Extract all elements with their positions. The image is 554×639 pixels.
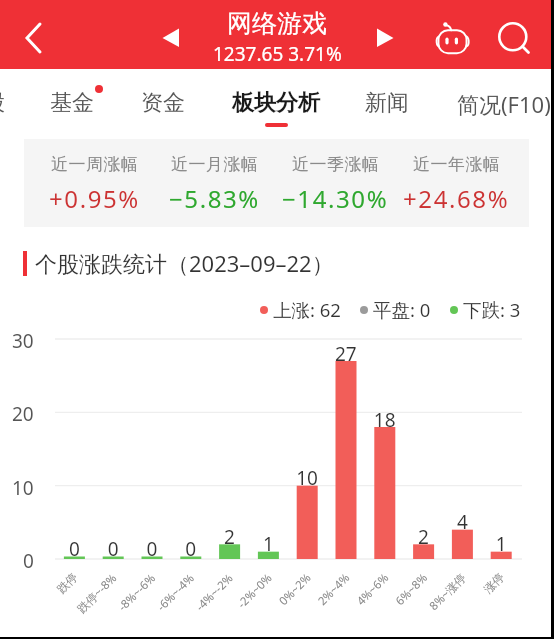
staticText: 个股涨跌统计（2023–09–22） (35, 248, 334, 278)
staticText: −5.83% (169, 182, 260, 215)
staticText: 近一周涨幅 (51, 154, 138, 175)
staticText: 平盘: 0 (373, 297, 431, 322)
staticText: 1237.65 3.71% (213, 41, 342, 67)
staticText: 股 (0, 89, 5, 117)
button[interactable]: AI assistant (428, 13, 472, 57)
button[interactable]: Search (491, 14, 535, 58)
staticText: 近一年涨幅 (413, 154, 500, 175)
staticText: −14.30% (282, 182, 389, 215)
staticText: 新闻 (365, 89, 409, 117)
button[interactable]: Next sector (366, 20, 402, 56)
staticText: +24.68% (403, 182, 510, 215)
staticText: 基金 (50, 89, 94, 117)
button[interactable]: 资金 (103, 69, 223, 127)
staticText: 下跌: 3 (463, 297, 521, 322)
staticText: 近一月涨幅 (171, 154, 258, 175)
staticText: 资金 (141, 89, 185, 117)
button[interactable]: 股 (0, 69, 54, 127)
staticText: 板块分析 (232, 89, 320, 117)
button[interactable]: 基金 (12, 69, 132, 127)
staticText: 近一季涨幅 (292, 154, 379, 175)
staticText: 上涨: 62 (273, 297, 341, 322)
button[interactable]: 简况(F10) (444, 69, 554, 127)
button[interactable]: Back (8, 14, 50, 56)
button[interactable]: 新闻 (327, 69, 447, 127)
staticText: +0.95% (49, 182, 140, 215)
button[interactable]: 板块分析 (216, 69, 336, 127)
staticText: 网络游戏 (227, 8, 327, 39)
button[interactable]: Previous sector (152, 20, 188, 56)
staticText: 简况(F10) (457, 89, 551, 119)
